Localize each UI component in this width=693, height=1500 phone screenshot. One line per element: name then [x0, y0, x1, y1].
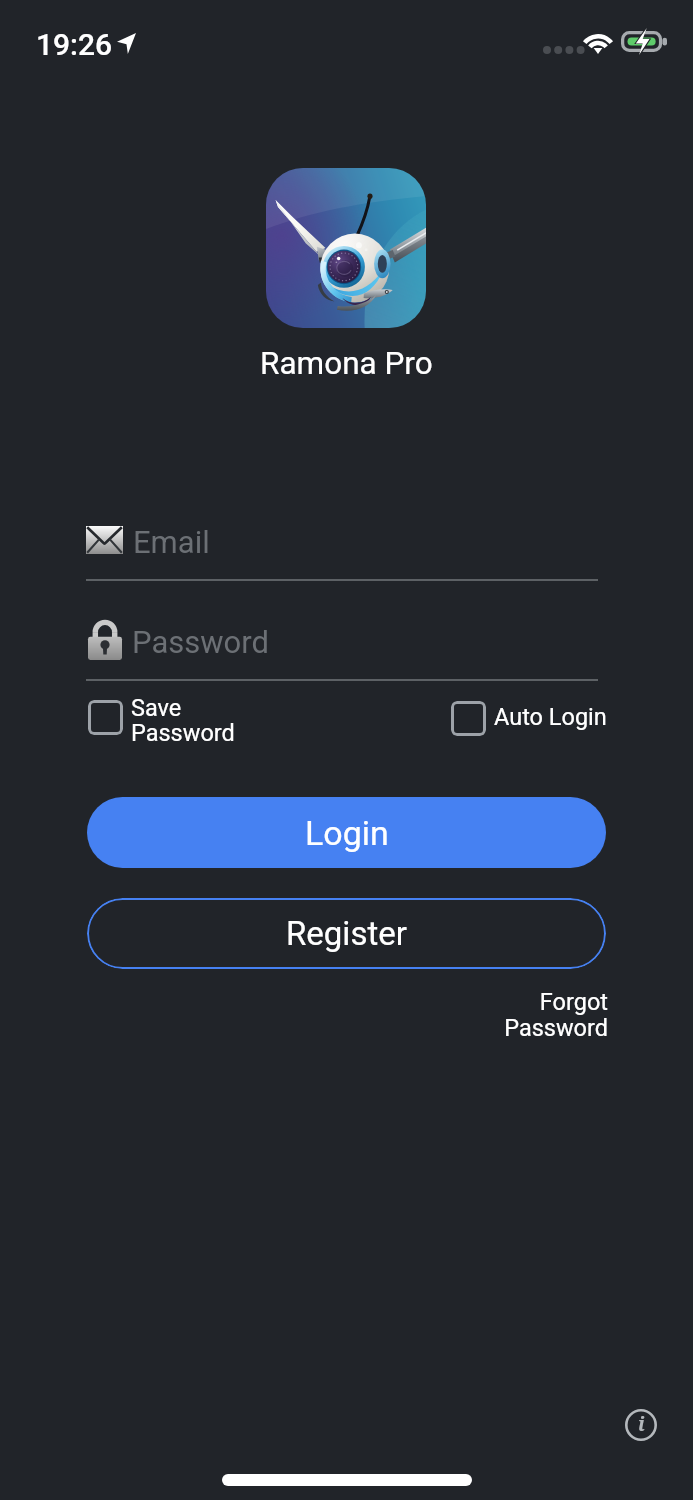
staticText: Auto Login: [494, 703, 607, 731]
button[interactable]: Login: [87, 797, 606, 868]
button[interactable]: Save Password: [88, 694, 235, 747]
button[interactable]: Auto Login: [451, 703, 607, 738]
staticText: Login: [305, 813, 389, 853]
button[interactable]: Forgot Password: [88, 988, 608, 1042]
button[interactable]: Password: [86, 612, 598, 681]
staticText: Password: [132, 624, 269, 660]
staticText: Register: [286, 914, 407, 953]
staticText: Save Password: [131, 694, 235, 747]
button[interactable]: Information: [620, 1404, 662, 1446]
button[interactable]: Register: [87, 898, 606, 969]
staticText: 19:26: [36, 27, 113, 62]
staticText: i: [638, 1411, 645, 1437]
staticText: Forgot Password: [88, 988, 608, 1042]
staticText: Ramona Pro: [260, 345, 433, 382]
staticText: Email: [133, 524, 210, 560]
button[interactable]: Email: [86, 512, 598, 581]
